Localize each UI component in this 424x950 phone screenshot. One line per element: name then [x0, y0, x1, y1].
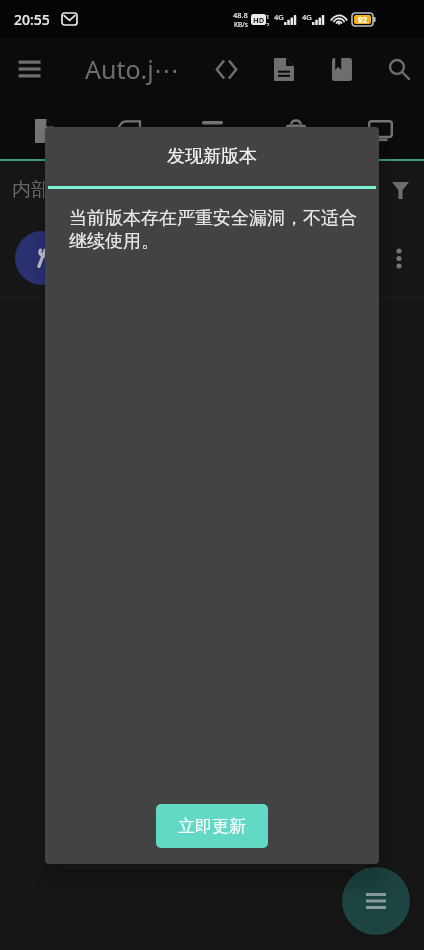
button[interactable]: Files — [4, 102, 84, 160]
staticText: 发现新版本 — [45, 145, 379, 168]
staticText: 48.8 — [233, 10, 248, 20]
staticText: 92 — [358, 14, 368, 25]
staticText: Auto.j⋯ — [85, 52, 179, 86]
button[interactable]: Tasks — [88, 102, 168, 160]
staticText: 立即更新 — [178, 816, 246, 837]
button[interactable]: 立即更新 — [156, 804, 268, 848]
staticText: 当前版本存在严重安全漏洞，不适合继续使用。 — [69, 207, 368, 253]
button[interactable]: Open menu — [342, 867, 410, 935]
staticText: KB/s — [234, 20, 248, 29]
button[interactable]: Documentation — [262, 47, 306, 91]
staticText: 4G — [274, 12, 284, 22]
button[interactable]: Code editor — [204, 47, 248, 91]
staticText: 20:55 — [14, 10, 50, 29]
staticText: HD — [253, 15, 265, 25]
button[interactable]: Navigation drawer — [7, 47, 51, 91]
staticText: 内部存储 — [12, 178, 88, 202]
button[interactable]: Remote — [340, 102, 420, 160]
button[interactable]: 脚本.js — [0, 219, 424, 297]
button[interactable]: More options — [382, 241, 416, 275]
staticText: 4G — [302, 12, 312, 22]
button[interactable]: Market — [256, 102, 336, 160]
button[interactable]: Search — [377, 47, 421, 91]
button[interactable]: Logs — [172, 102, 252, 160]
button[interactable]: Filter — [383, 173, 417, 207]
staticText: 1 — [266, 13, 270, 21]
button[interactable]: Saved scripts — [320, 47, 364, 91]
staticText: 脚本.js — [83, 237, 132, 259]
staticText: 2 — [266, 21, 270, 26]
